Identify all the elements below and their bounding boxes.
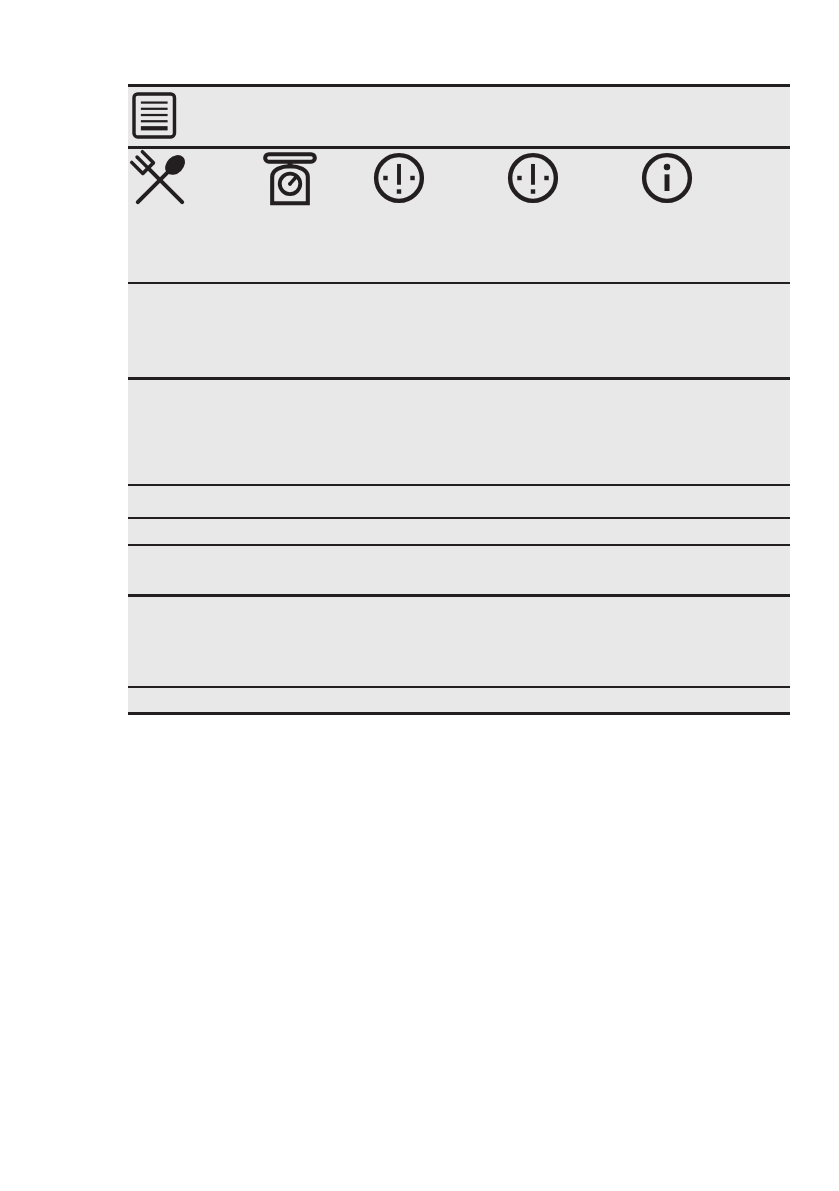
button[interactable]: Caution: [373, 152, 425, 204]
button[interactable]: Information: [641, 152, 693, 204]
button[interactable]: Caution: [507, 152, 559, 204]
button[interactable]: Instructions: [128, 87, 790, 146]
button[interactable]: Weigh ingredients: [263, 152, 317, 206]
button[interactable]: Instructions: [134, 94, 180, 140]
button[interactable]: Food preparation: [132, 152, 188, 208]
button[interactable]: Food preparation: [128, 149, 790, 282]
